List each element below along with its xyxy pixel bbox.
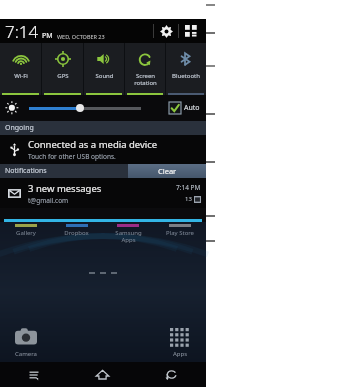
staticText: t@gmail.com xyxy=(28,196,69,205)
button[interactable]: Auto xyxy=(169,102,200,114)
button[interactable]: Bluetooth xyxy=(166,43,206,95)
button[interactable]: Edit quick settings xyxy=(179,19,203,43)
button[interactable]: Menu xyxy=(0,362,68,387)
staticText: 13 xyxy=(185,195,192,203)
staticText: Auto xyxy=(184,103,200,113)
staticText: Apps xyxy=(173,350,188,358)
staticText: Sound xyxy=(95,72,114,80)
staticText: Wi-Fi xyxy=(14,72,28,80)
button[interactable]: Connected as a media device xyxy=(0,135,206,164)
button[interactable]: Apps xyxy=(154,328,206,358)
button[interactable]: Brightness xyxy=(29,101,165,115)
button[interactable]: Home xyxy=(68,362,137,387)
staticText: 7:14 xyxy=(5,20,39,43)
button[interactable]: Camera xyxy=(0,326,51,358)
staticText: Play Store xyxy=(166,229,194,237)
staticText: PM xyxy=(42,31,53,41)
staticText: Screen rotation xyxy=(134,72,157,87)
button[interactable]: Samsung Apps xyxy=(102,224,154,244)
button[interactable]: Gallery xyxy=(0,224,51,237)
button[interactable]: Play Store xyxy=(154,224,206,237)
staticText: GPS xyxy=(57,72,69,80)
staticText: Bluetooth xyxy=(172,72,200,80)
staticText: Camera xyxy=(15,350,37,358)
staticText: Dropbox xyxy=(64,229,89,237)
button[interactable]: Sound xyxy=(84,43,124,95)
button[interactable]: Screen rotation xyxy=(125,43,165,95)
button[interactable]: Back xyxy=(137,362,206,387)
button[interactable]: GPS xyxy=(42,43,83,95)
button[interactable]: 3 new messages xyxy=(0,178,206,208)
button[interactable]: Clear xyxy=(128,164,206,178)
staticText: Connected as a media device xyxy=(28,138,158,151)
staticText: Samsung Apps xyxy=(115,229,142,244)
staticText: Touch for other USB options. xyxy=(28,152,116,161)
staticText: Notifications xyxy=(5,166,47,176)
button[interactable]: Settings xyxy=(154,19,178,43)
staticText: 3 new messages xyxy=(28,182,102,195)
staticText: 7:14 PM xyxy=(176,183,201,192)
staticText: WED, OCTOBER 23 xyxy=(57,33,105,40)
staticText: Ongoing xyxy=(5,123,34,133)
button[interactable]: Dropbox xyxy=(51,224,102,237)
button[interactable]: Wi-Fi xyxy=(0,43,41,95)
staticText: Clear xyxy=(158,166,177,176)
staticText: Gallery xyxy=(16,229,36,237)
